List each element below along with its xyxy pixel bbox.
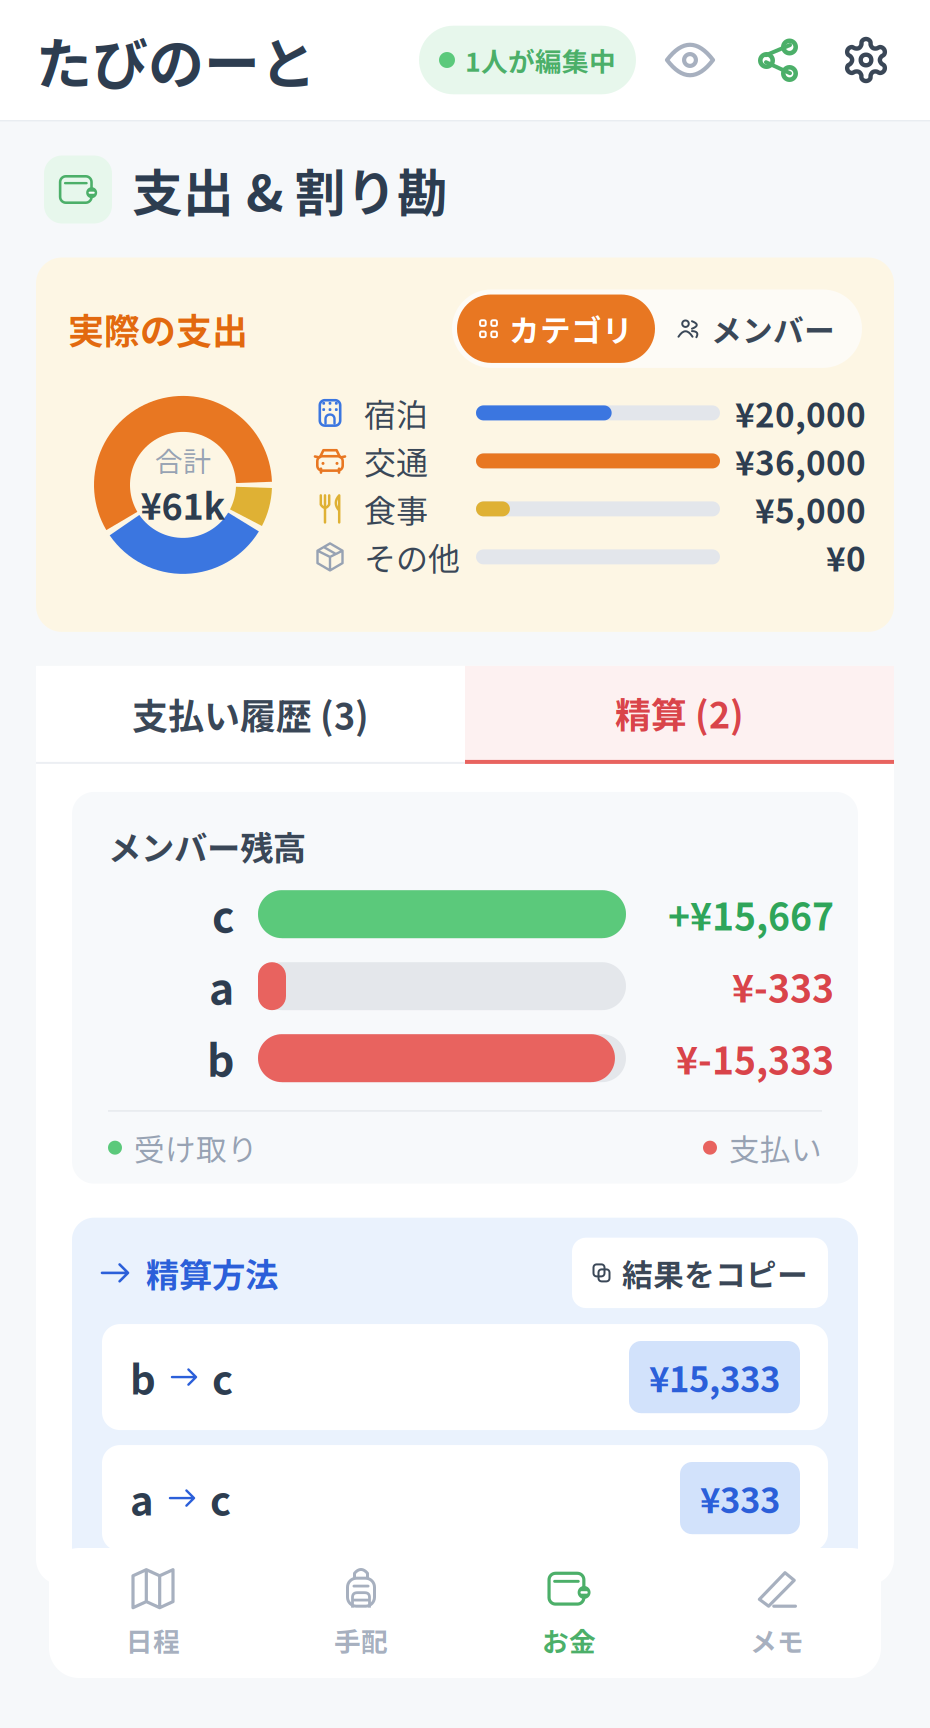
staticText: 支払い履歴 (3) <box>132 688 369 740</box>
button[interactable]: Share <box>750 32 806 88</box>
button[interactable]: Settings <box>838 32 894 88</box>
staticText: 手配 <box>334 1621 388 1659</box>
staticText: ¥20,000 <box>735 389 866 437</box>
staticText: ¥333 <box>700 1473 780 1523</box>
staticText: b <box>130 1348 156 1406</box>
button[interactable]: メンバー <box>655 294 857 363</box>
staticText: 受け取り <box>134 1125 258 1170</box>
button[interactable]: 精算 (2) <box>465 666 894 764</box>
button[interactable]: 結果をコピー <box>572 1238 828 1308</box>
staticText: 食事 <box>364 486 428 532</box>
staticText: c <box>210 1469 231 1527</box>
staticText: 1人が編集中 <box>465 41 616 79</box>
button[interactable]: b <box>102 1324 828 1430</box>
staticText: c <box>212 1348 233 1406</box>
staticText: ¥-15,333 <box>676 1031 834 1085</box>
staticText: 宿泊 <box>364 390 428 436</box>
button[interactable]: お金 <box>465 1548 673 1678</box>
staticText: 交通 <box>364 438 428 484</box>
staticText: 日程 <box>126 1621 180 1659</box>
staticText: ¥61k <box>140 478 225 530</box>
staticText: 精算 (2) <box>615 687 744 739</box>
staticText: +¥15,667 <box>668 887 834 941</box>
staticText: a <box>209 955 234 1017</box>
button[interactable]: メモ <box>673 1548 881 1678</box>
staticText: a <box>130 1469 154 1527</box>
button[interactable]: Preview <box>662 32 718 88</box>
button[interactable]: カテゴリ <box>457 294 655 363</box>
staticText: ¥-333 <box>732 959 834 1013</box>
staticText: メンバー <box>711 306 835 351</box>
staticText: c <box>212 883 234 945</box>
staticText: 実際の支出 <box>68 303 248 355</box>
staticText: 支出 & 割り勘 <box>132 153 448 226</box>
staticText: たびのーと <box>36 19 316 101</box>
staticText: メンバー残高 <box>108 822 306 870</box>
staticText: ¥36,000 <box>735 437 866 485</box>
staticText: ¥15,333 <box>649 1352 780 1402</box>
button[interactable]: 支払い履歴 (3) <box>36 666 465 764</box>
staticText: b <box>207 1027 234 1089</box>
staticText: 結果をコピー <box>622 1251 808 1295</box>
button[interactable]: 手配 <box>257 1548 465 1678</box>
staticText: ¥5,000 <box>755 485 866 533</box>
staticText: お金 <box>542 1621 596 1659</box>
staticText: 精算方法 <box>146 1249 278 1297</box>
staticText: 支払い <box>729 1125 822 1170</box>
button[interactable]: 日程 <box>49 1548 257 1678</box>
staticText: カテゴリ <box>509 306 633 351</box>
staticText: 合計 <box>155 440 211 480</box>
button[interactable]: a <box>102 1445 828 1551</box>
staticText: その他 <box>364 534 460 580</box>
staticText: メモ <box>750 1621 804 1659</box>
staticText: ¥0 <box>826 533 866 581</box>
